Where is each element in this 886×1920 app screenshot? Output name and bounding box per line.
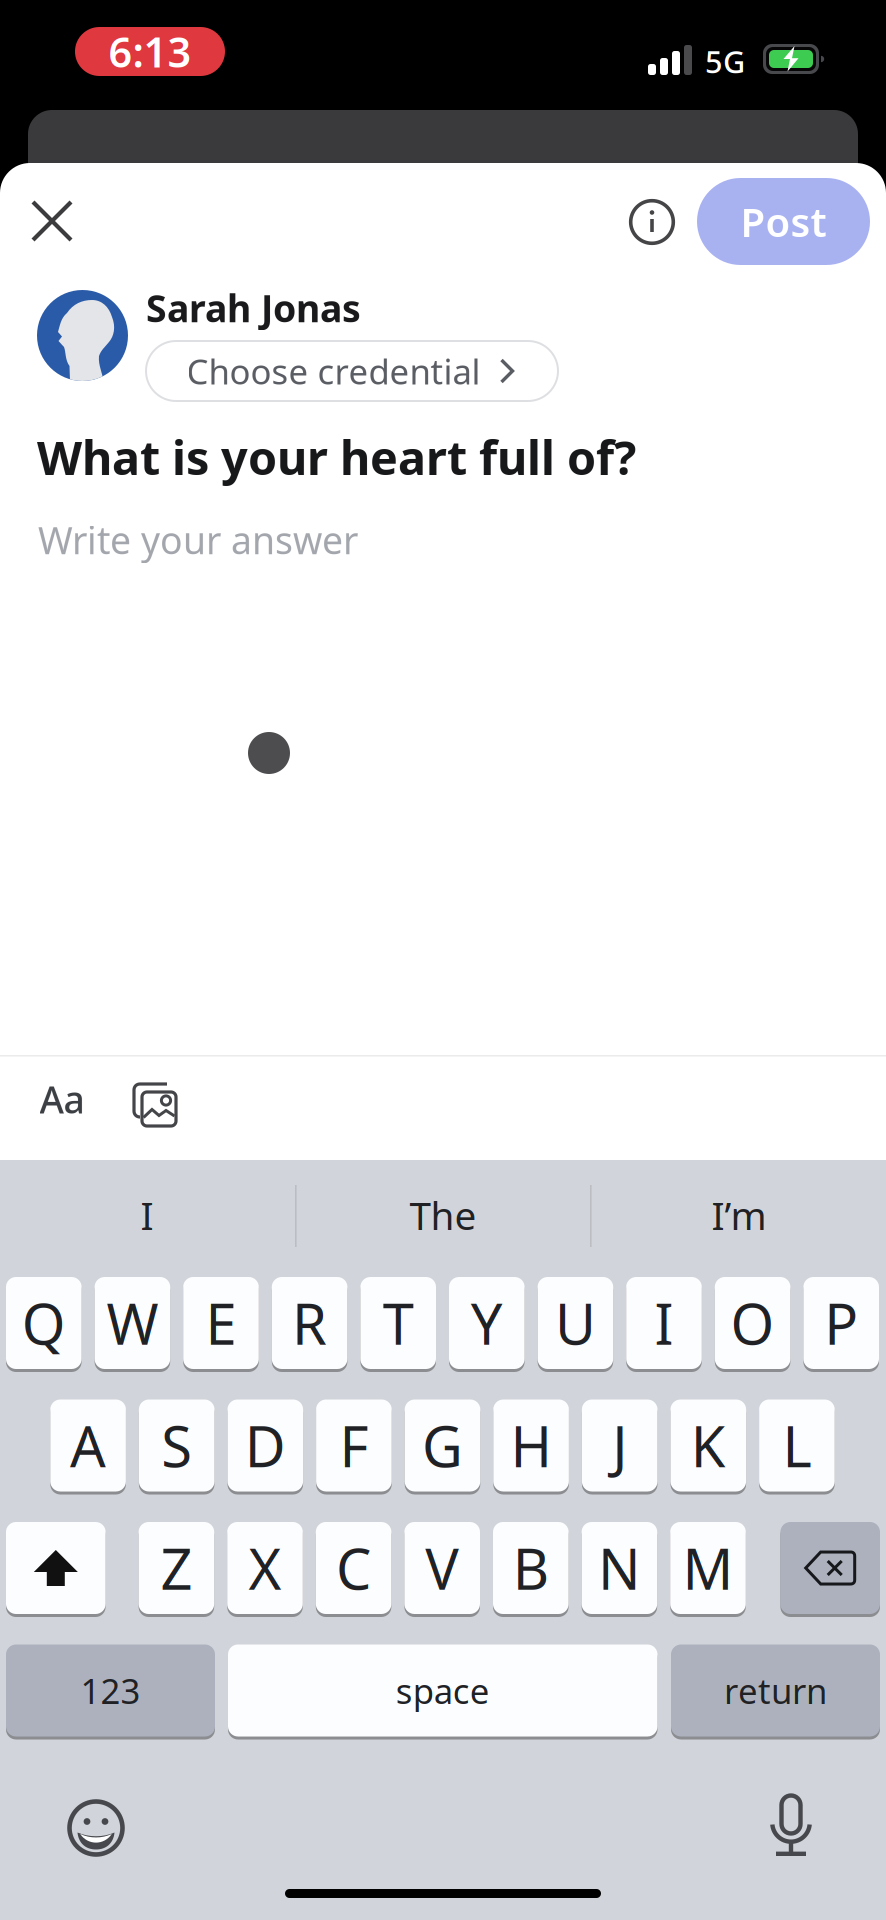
staticText: C: [336, 1531, 371, 1605]
button[interactable]: The: [303, 1170, 583, 1260]
button[interactable]: M: [670, 1522, 746, 1617]
staticText: return: [724, 1667, 827, 1713]
button[interactable]: Info: [624, 194, 680, 250]
staticText: Sarah Jonas: [146, 283, 361, 333]
staticText: B: [513, 1531, 549, 1605]
button[interactable]: E: [183, 1277, 259, 1372]
button[interactable]: G: [405, 1399, 480, 1494]
button[interactable]: Post: [697, 178, 870, 265]
button[interactable]: H: [493, 1399, 569, 1494]
button[interactable]: Add image: [127, 1077, 183, 1133]
button[interactable]: A: [50, 1399, 126, 1494]
button[interactable]: Close: [22, 191, 82, 251]
staticText: Write your answer: [38, 515, 358, 565]
button[interactable]: Emoji: [67, 1799, 125, 1857]
button[interactable]: I’m: [599, 1170, 879, 1260]
staticText: A: [70, 1408, 106, 1483]
staticText: P: [824, 1286, 858, 1360]
staticText: T: [383, 1286, 414, 1360]
staticText: space: [396, 1667, 490, 1713]
button[interactable]: R: [272, 1277, 347, 1372]
staticText: L: [782, 1408, 811, 1483]
staticText: K: [691, 1408, 726, 1483]
button[interactable]: B: [493, 1522, 569, 1617]
button[interactable]: U: [538, 1277, 613, 1372]
button[interactable]: F: [316, 1399, 392, 1494]
staticText: D: [245, 1408, 286, 1483]
button[interactable]: W: [95, 1277, 170, 1372]
button[interactable]: T: [360, 1277, 436, 1372]
staticText: U: [555, 1286, 596, 1360]
staticText: I’m: [711, 1189, 766, 1241]
button[interactable]: L: [759, 1399, 835, 1494]
button[interactable]: J: [582, 1399, 657, 1494]
staticText: J: [612, 1408, 627, 1483]
staticText: 123: [80, 1667, 140, 1713]
button[interactable]: I: [626, 1277, 702, 1372]
staticText: V: [425, 1531, 459, 1605]
button[interactable]: Dictate: [770, 1793, 812, 1857]
staticText: Q: [22, 1286, 66, 1360]
button[interactable]: V: [404, 1522, 480, 1617]
button[interactable]: Text format: [32, 1071, 92, 1127]
staticText: E: [205, 1286, 236, 1360]
button[interactable]: I: [7, 1170, 287, 1260]
staticText: S: [161, 1408, 192, 1483]
button[interactable]: S: [139, 1399, 214, 1494]
staticText: M: [682, 1531, 733, 1605]
button[interactable]: Choose credential: [146, 341, 558, 401]
staticText: What is your heart full of?: [37, 426, 636, 488]
button[interactable]: Shift: [6, 1522, 106, 1617]
button[interactable]: Delete: [780, 1522, 880, 1617]
button[interactable]: 123: [6, 1644, 215, 1739]
button[interactable]: N: [582, 1522, 657, 1617]
button[interactable]: P: [803, 1277, 879, 1372]
button[interactable]: X: [227, 1522, 303, 1617]
button[interactable]: Z: [139, 1522, 214, 1617]
staticText: N: [598, 1531, 641, 1605]
staticText: I: [654, 1286, 673, 1360]
button[interactable]: D: [227, 1399, 303, 1494]
staticText: The: [409, 1189, 476, 1241]
staticText: Choose credential: [186, 348, 480, 394]
staticText: 6:13: [108, 24, 191, 79]
button[interactable]: Y: [449, 1277, 525, 1372]
button[interactable]: return: [671, 1644, 880, 1739]
staticText: G: [422, 1408, 463, 1483]
staticText: W: [106, 1286, 158, 1360]
staticText: X: [248, 1531, 281, 1605]
staticText: Aa: [39, 1074, 84, 1124]
button[interactable]: O: [715, 1277, 790, 1372]
staticText: R: [292, 1286, 327, 1360]
staticText: Z: [160, 1531, 192, 1605]
button[interactable]: Q: [6, 1277, 82, 1372]
staticText: H: [511, 1408, 552, 1483]
staticText: I: [140, 1189, 153, 1241]
staticText: F: [339, 1408, 368, 1483]
button[interactable]: K: [670, 1399, 746, 1494]
staticText: Y: [471, 1286, 503, 1360]
staticText: O: [731, 1286, 775, 1360]
button[interactable]: Recording indicator: [75, 27, 225, 76]
button[interactable]: C: [316, 1522, 391, 1617]
button[interactable]: space: [228, 1644, 657, 1739]
staticText: 5G: [705, 41, 745, 82]
staticText: Post: [740, 195, 826, 248]
